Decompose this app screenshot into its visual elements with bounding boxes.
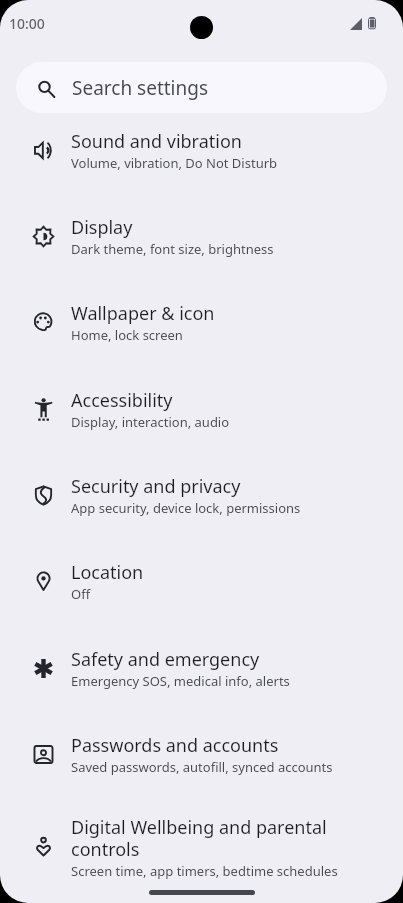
- button[interactable]: Sound and vibration: [0, 107, 403, 193]
- button[interactable]: Location: [0, 538, 403, 624]
- button[interactable]: Passwords and accounts: [0, 711, 403, 797]
- staticText: Dark theme, font size, brightness: [71, 240, 274, 258]
- staticText: App security, device lock, permissions: [71, 499, 301, 517]
- staticText: Screen time, app timers, bedtime schedul…: [71, 862, 338, 880]
- staticText: Sound and vibration: [71, 129, 242, 154]
- staticText: Volume, vibration, Do Not Disturb: [71, 154, 278, 172]
- button[interactable]: Display: [0, 193, 403, 279]
- staticText: Location: [71, 560, 144, 585]
- button[interactable]: Digital Wellbeing and parental controls: [0, 797, 403, 897]
- button[interactable]: Safety and emergency: [0, 625, 403, 711]
- staticText: Emergency SOS, medical info, alerts: [71, 672, 290, 690]
- staticText: 10:00: [9, 14, 45, 33]
- button[interactable]: Search settings: [16, 62, 387, 113]
- button[interactable]: Wallpaper & icon: [0, 279, 403, 365]
- staticText: Accessibility: [71, 388, 173, 413]
- staticText: Display, interaction, audio: [71, 413, 230, 431]
- button[interactable]: Security and privacy: [0, 452, 403, 538]
- staticText: Digital Wellbeing and parental controls: [71, 815, 381, 862]
- staticText: Off: [71, 585, 91, 603]
- button[interactable]: Accessibility: [0, 366, 403, 452]
- staticText: Security and privacy: [71, 474, 241, 499]
- staticText: Display: [71, 215, 133, 240]
- staticText: Home, lock screen: [71, 326, 183, 344]
- staticText: Wallpaper & icon: [71, 301, 215, 326]
- staticText: Safety and emergency: [71, 647, 260, 672]
- staticText: Saved passwords, autofill, synced accoun…: [71, 758, 333, 776]
- staticText: Search settings: [72, 75, 209, 101]
- staticText: Passwords and accounts: [71, 733, 279, 758]
